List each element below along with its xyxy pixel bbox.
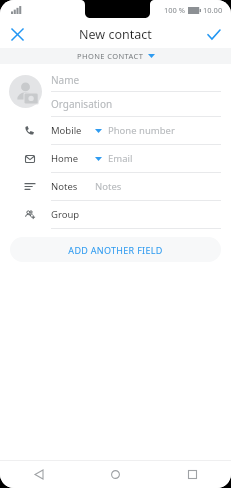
other: Notes bbox=[25, 183, 35, 190]
staticText: Email bbox=[108, 152, 133, 165]
staticText: Notes bbox=[51, 180, 78, 193]
button[interactable]: PHONE CONTACT bbox=[0, 48, 231, 64]
staticText: Organisation bbox=[51, 97, 113, 111]
staticText: PHONE CONTACT bbox=[77, 51, 144, 61]
button[interactable]: ADD ANOTHER FIELD bbox=[10, 237, 221, 262]
button[interactable]: Save contact bbox=[197, 20, 231, 48]
button[interactable]: Phone bbox=[0, 117, 231, 144]
staticText: New contact bbox=[79, 26, 152, 43]
staticText: Mobile bbox=[51, 124, 82, 137]
button[interactable]: Back bbox=[0, 461, 77, 488]
button[interactable]: Name bbox=[51, 68, 221, 91]
other: Phone bbox=[25, 126, 34, 135]
staticText: Phone number bbox=[108, 124, 175, 137]
staticText: 100 % bbox=[164, 5, 186, 15]
staticText: Group bbox=[51, 208, 80, 221]
button[interactable]: Add photo bbox=[9, 75, 42, 108]
staticText: Home bbox=[51, 152, 79, 165]
other: Group bbox=[25, 210, 35, 219]
button[interactable]: Close bbox=[0, 20, 34, 48]
staticText: ADD ANOTHER FIELD bbox=[68, 244, 163, 256]
button[interactable]: Group bbox=[0, 201, 231, 228]
staticText: Name bbox=[51, 73, 80, 87]
button[interactable]: Organisation bbox=[51, 92, 221, 115]
staticText: Notes bbox=[95, 180, 122, 193]
button[interactable]: Email bbox=[0, 145, 231, 172]
button[interactable]: Home bbox=[77, 461, 154, 488]
button[interactable]: Recent apps bbox=[154, 461, 231, 488]
button[interactable]: Notes bbox=[0, 173, 231, 200]
staticText: 10.00 bbox=[203, 5, 223, 15]
other: Email bbox=[25, 155, 35, 163]
